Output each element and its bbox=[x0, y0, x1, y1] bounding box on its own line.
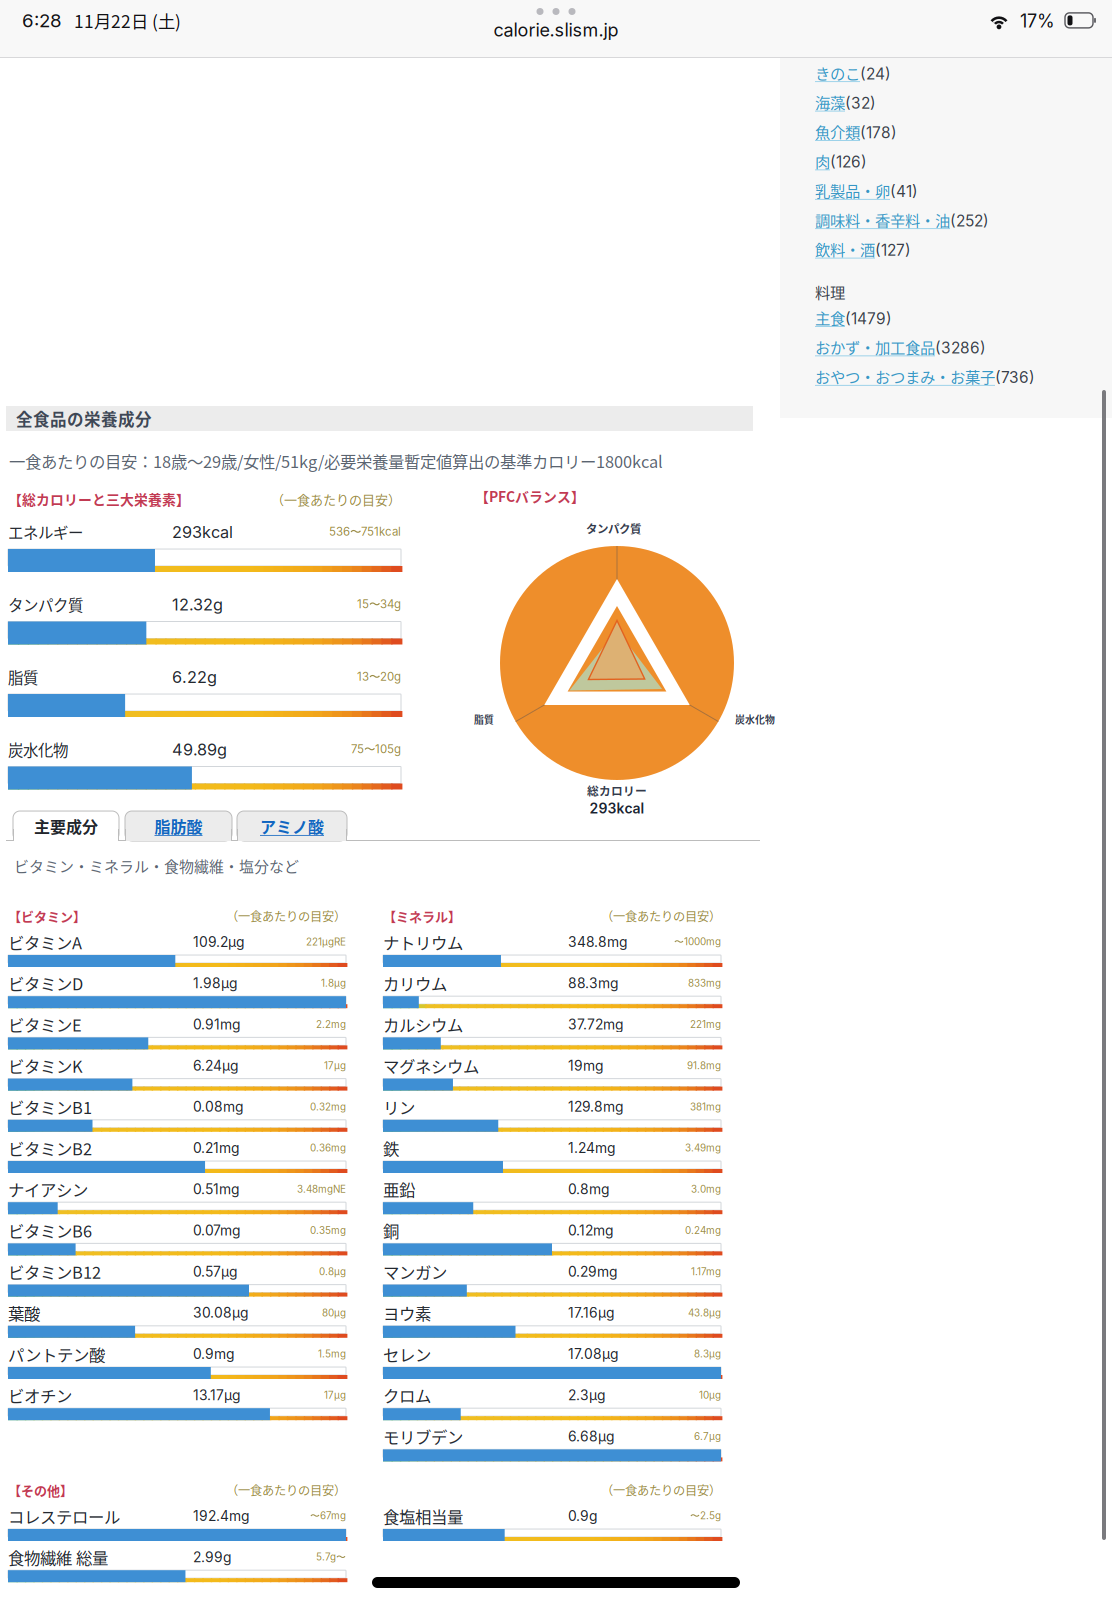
staticText: 炭水化物 bbox=[8, 738, 68, 761]
button[interactable]: 乳製品・卵 bbox=[815, 176, 1080, 205]
staticText: 12.32g bbox=[172, 595, 223, 614]
staticText: 海藻 bbox=[815, 91, 845, 113]
staticText: 80μg bbox=[322, 1307, 346, 1319]
button[interactable]: 調味料・香辛料・油 bbox=[815, 205, 1080, 234]
staticText: 0.51mg bbox=[193, 1181, 240, 1198]
staticText: 6.24μg bbox=[193, 1057, 239, 1074]
staticText: コレステロール bbox=[8, 1504, 120, 1528]
staticText: 13.17μg bbox=[193, 1387, 241, 1404]
staticText: 亜鉛 bbox=[383, 1177, 415, 1201]
staticText: おやつ・おつまみ・お菓子 bbox=[815, 365, 995, 387]
staticText: 〜1000mg bbox=[674, 936, 721, 948]
button[interactable]: アミノ酸 bbox=[237, 811, 347, 841]
staticText: ビタミンE bbox=[8, 1012, 82, 1036]
staticText: おかず・加工食品 bbox=[815, 336, 935, 358]
staticText: 調味料・香辛料・油 bbox=[815, 209, 950, 231]
staticText: 11月22日 (土) bbox=[74, 8, 181, 33]
staticText: 3.0mg bbox=[691, 1183, 721, 1195]
staticText: 0.32mg bbox=[310, 1101, 346, 1113]
staticText: 1.24mg bbox=[568, 1140, 616, 1156]
staticText: 脂質 bbox=[8, 666, 38, 688]
staticText: 全食品の栄養成分 bbox=[16, 406, 152, 430]
staticText: 0.24mg bbox=[685, 1224, 721, 1236]
staticText: 2.2mg bbox=[316, 1018, 346, 1030]
button[interactable]: 主要成分 bbox=[13, 811, 119, 841]
staticText: (127) bbox=[875, 241, 911, 259]
staticText: ビタミンA bbox=[8, 930, 82, 954]
staticText: 2.99g bbox=[193, 1549, 232, 1566]
staticText: 13〜20g bbox=[357, 670, 401, 684]
staticText: （一食あたりの目安） bbox=[226, 907, 346, 925]
staticText: 1.8μg bbox=[321, 977, 346, 989]
button[interactable]: 肉 bbox=[815, 146, 1080, 176]
staticText: 75〜105g bbox=[351, 742, 401, 757]
staticText: 2.3μg bbox=[568, 1387, 606, 1404]
button[interactable]: おかず・加工食品 bbox=[815, 332, 1080, 362]
staticText: 0.07mg bbox=[193, 1222, 241, 1239]
staticText: 脂肪酸 bbox=[154, 814, 202, 838]
staticText: 6.68μg bbox=[568, 1428, 615, 1445]
staticText: マンガン bbox=[383, 1260, 447, 1283]
staticText: 肉 bbox=[815, 150, 830, 172]
staticText: 【ビタミン】 bbox=[8, 906, 86, 925]
staticText: 〜2.5g bbox=[690, 1510, 721, 1522]
staticText: ナトリウム bbox=[383, 930, 463, 954]
staticText: 0.12mg bbox=[568, 1222, 614, 1239]
staticText: タンパク質 bbox=[8, 593, 83, 616]
staticText: 88.3mg bbox=[568, 975, 619, 992]
staticText: 0.91mg bbox=[193, 1016, 241, 1033]
staticText: 1.98μg bbox=[193, 975, 238, 992]
staticText: 0.35mg bbox=[310, 1224, 346, 1236]
staticText: ビタミンB12 bbox=[8, 1260, 101, 1283]
staticText: 17μg bbox=[324, 1060, 346, 1071]
staticText: 6:28 bbox=[22, 9, 62, 32]
staticText: 8.3μg bbox=[694, 1348, 721, 1360]
staticText: ビタミンK bbox=[8, 1054, 83, 1077]
button[interactable]: 脂肪酸 bbox=[125, 811, 232, 841]
staticText: 5.7g〜 bbox=[316, 1551, 346, 1563]
staticText: 293kcal bbox=[172, 522, 233, 542]
staticText: 17.16μg bbox=[568, 1304, 615, 1321]
button[interactable]: 海藻 bbox=[815, 87, 1080, 117]
staticText: 食塩相当量 bbox=[383, 1504, 463, 1528]
staticText: (252) bbox=[950, 211, 989, 230]
staticText: 129.8mg bbox=[568, 1098, 624, 1115]
staticText: きのこ bbox=[815, 62, 860, 84]
staticText: 30.08μg bbox=[193, 1304, 249, 1321]
staticText: 【総カロリーと三大栄養素】 bbox=[8, 489, 190, 509]
staticText: (178) bbox=[860, 123, 897, 142]
staticText: 0.57μg bbox=[193, 1263, 238, 1280]
staticText: 6.7μg bbox=[694, 1430, 721, 1442]
staticText: アミノ酸 bbox=[260, 814, 324, 838]
staticText: ビタミンD bbox=[8, 971, 83, 995]
staticText: (1479) bbox=[845, 309, 892, 328]
staticText: 0.29mg bbox=[568, 1263, 618, 1280]
staticText: 17.08μg bbox=[568, 1346, 619, 1362]
staticText: (24) bbox=[860, 64, 891, 83]
staticText: ビタミン・ミネラル・食物繊維・塩分など bbox=[14, 855, 299, 877]
button[interactable]: 主食 bbox=[815, 303, 1080, 332]
staticText: 6.22g bbox=[172, 667, 217, 687]
button[interactable]: おやつ・おつまみ・お菓子 bbox=[815, 362, 1080, 391]
staticText: 総カロリー bbox=[587, 782, 647, 799]
staticText: 0.21mg bbox=[193, 1140, 240, 1156]
button[interactable]: きのこ bbox=[815, 58, 1080, 87]
staticText: 293kcal bbox=[589, 800, 644, 817]
staticText: （一食あたりの目安） bbox=[271, 489, 401, 508]
staticText: 833mg bbox=[688, 977, 721, 989]
staticText: 主食 bbox=[815, 306, 845, 329]
staticText: 魚介類 bbox=[815, 120, 860, 143]
button[interactable]: 飲料・酒 bbox=[815, 234, 1080, 264]
staticText: 1.17mg bbox=[691, 1266, 721, 1277]
button[interactable]: 魚介類 bbox=[815, 117, 1080, 146]
staticText: 【その他】 bbox=[8, 1480, 73, 1499]
staticText: 3.48mgNE bbox=[297, 1183, 346, 1195]
staticText: 主要成分 bbox=[34, 814, 98, 838]
staticText: 0.9mg bbox=[193, 1346, 235, 1362]
staticText: 0.8mg bbox=[568, 1181, 610, 1198]
staticText: モリブデン bbox=[383, 1424, 463, 1448]
staticText: 17μg bbox=[324, 1389, 346, 1401]
staticText: 葉酸 bbox=[8, 1301, 40, 1325]
staticText: セレン bbox=[383, 1342, 431, 1366]
staticText: （一食あたりの目安） bbox=[601, 1481, 721, 1499]
